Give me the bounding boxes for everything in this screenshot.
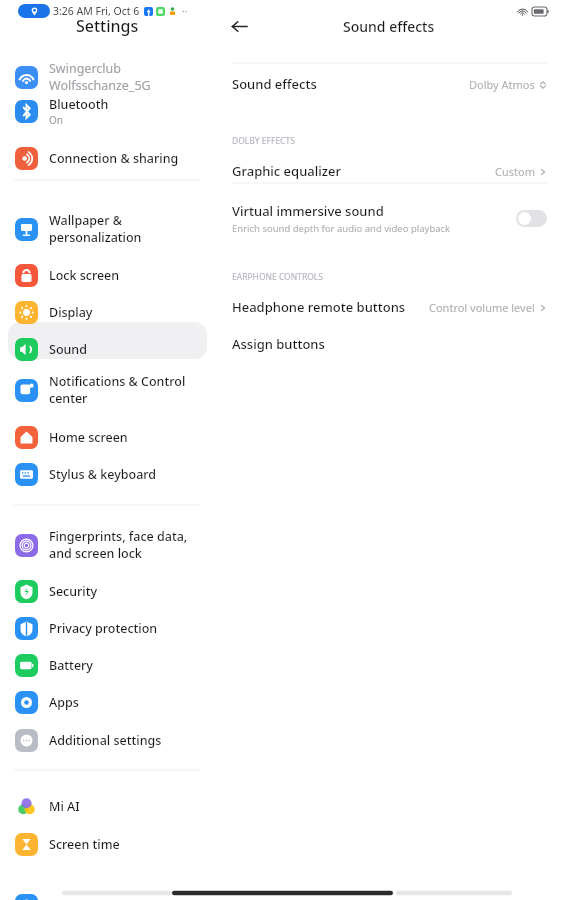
- button[interactable]: Bluetooth: [0, 91, 215, 131]
- staticText: Headphone remote buttons: [232, 298, 406, 316]
- button[interactable]: Graphic equalizer: [215, 155, 563, 187]
- button[interactable]: Virtual immersive sound toggle: [516, 210, 547, 227]
- button[interactable]: Stylus & keyboard: [0, 457, 215, 491]
- staticText: center: [49, 390, 88, 407]
- button[interactable]: Screen time: [0, 827, 215, 861]
- staticText: Custom: [495, 164, 535, 179]
- button[interactable]: Additional settings: [0, 723, 215, 757]
- button[interactable]: Fingerprints, face data,: [0, 524, 215, 566]
- staticText: Fingerprints, face data,: [49, 528, 188, 545]
- button[interactable]: Battery: [0, 648, 215, 682]
- staticText: personalization: [49, 229, 142, 246]
- staticText: Sound: [49, 341, 87, 358]
- staticText: Sound effects: [232, 75, 317, 93]
- button[interactable]: Lock screen: [0, 258, 215, 292]
- button[interactable]: Notifications & Control: [0, 369, 215, 411]
- button[interactable]: Back: [222, 9, 256, 43]
- staticText: Virtual immersive sound: [232, 202, 384, 220]
- staticText: Security: [49, 583, 98, 600]
- staticText: 3:26 AM Fri, Oct 6: [53, 4, 140, 18]
- button[interactable]: Wallpaper &: [0, 208, 215, 250]
- staticText: Assign buttons: [232, 335, 325, 353]
- button[interactable]: Assign buttons: [215, 328, 563, 360]
- staticText: Connection & sharing: [49, 150, 179, 167]
- button[interactable]: Connection & sharing: [0, 141, 215, 175]
- button[interactable]: Sound: [0, 332, 215, 366]
- staticText: Control volume level: [429, 300, 535, 315]
- staticText: Apps: [49, 694, 79, 711]
- staticText: Enrich sound depth for audio and video p…: [232, 222, 451, 235]
- staticText: Settings: [76, 15, 139, 37]
- staticText: Swingerclub Wolfsschanze_5G: [49, 60, 215, 94]
- staticText: EARPHONE CONTROLS: [232, 271, 323, 283]
- staticText: Wallpaper &: [49, 212, 122, 229]
- button[interactable]: Apps: [0, 685, 215, 719]
- staticText: ··: [182, 4, 188, 18]
- staticText: Dolby Atmos: [469, 77, 535, 92]
- button[interactable]: Virtual immersive sound: [215, 196, 563, 240]
- staticText: Home screen: [49, 429, 128, 446]
- staticText: Notifications & Control: [49, 373, 186, 390]
- staticText: Bluetooth: [49, 96, 109, 113]
- staticText: Display: [49, 304, 93, 321]
- staticText: DOLBY EFFECTS: [232, 135, 295, 147]
- staticText: Screen time: [49, 836, 120, 853]
- staticText: Stylus & keyboard: [49, 466, 157, 483]
- button[interactable]: Mi AI: [0, 789, 215, 823]
- staticText: Mi AI: [49, 798, 80, 815]
- button[interactable]: Accounts & sync: [0, 888, 215, 900]
- button[interactable]: Sound effects: [215, 65, 563, 103]
- button[interactable]: Display: [0, 295, 215, 329]
- staticText: Graphic equalizer: [232, 162, 341, 180]
- staticText: Privacy protection: [49, 620, 158, 637]
- button[interactable]: Headphone remote buttons: [215, 291, 563, 323]
- staticText: Battery: [49, 657, 93, 674]
- staticText: Sound effects: [343, 17, 435, 36]
- button[interactable]: Privacy protection: [0, 611, 215, 645]
- staticText: Lock screen: [49, 267, 120, 284]
- staticText: Additional settings: [49, 732, 162, 749]
- button[interactable]: Security: [0, 574, 215, 608]
- button[interactable]: Home screen: [0, 420, 215, 454]
- button[interactable]: Swingerclub Wolfsschanze_5G: [0, 60, 215, 94]
- staticText: On: [49, 113, 63, 127]
- staticText: and screen lock: [49, 545, 142, 562]
